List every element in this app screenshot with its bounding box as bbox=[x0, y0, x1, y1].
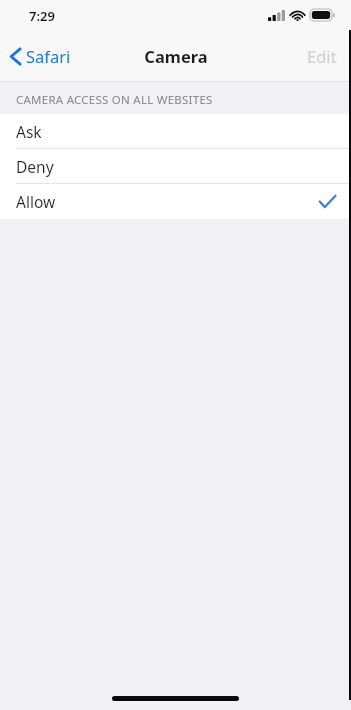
button[interactable]: Edit bbox=[293, 37, 351, 75]
button[interactable]: Ask bbox=[0, 114, 351, 149]
staticText: Safari bbox=[26, 45, 71, 67]
staticText: CAMERA ACCESS ON ALL WEBSITES bbox=[16, 92, 213, 108]
button[interactable]: Safari bbox=[0, 39, 81, 73]
button[interactable]: Deny bbox=[0, 149, 351, 184]
staticText: Allow bbox=[16, 191, 56, 212]
staticText: Ask bbox=[16, 121, 42, 142]
staticText: Edit bbox=[307, 45, 337, 67]
button[interactable]: Allow bbox=[0, 184, 351, 219]
staticText: Deny bbox=[16, 156, 54, 177]
staticText: 7:29 bbox=[29, 7, 55, 25]
staticText: Camera bbox=[144, 45, 208, 67]
